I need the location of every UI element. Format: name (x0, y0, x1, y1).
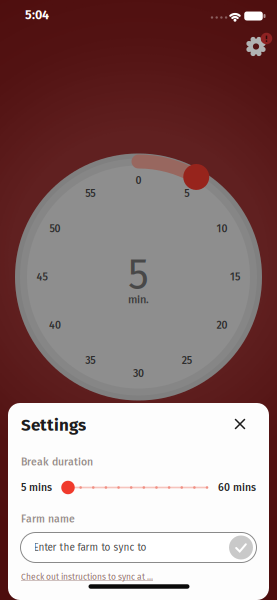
staticText: 5 (128, 250, 149, 299)
staticText: 50 (49, 222, 60, 235)
staticText: 5 (184, 187, 189, 200)
staticText: 35 (85, 354, 95, 367)
staticText: 10 (217, 222, 228, 235)
staticText: Break duration (21, 456, 93, 468)
staticText: 0 (135, 174, 141, 187)
staticText: Farm name (21, 513, 75, 525)
button[interactable]: Break duration slider (62, 478, 213, 496)
staticText: 5 mins (21, 481, 52, 494)
staticText: 45 (36, 271, 47, 283)
staticText: Settings (21, 415, 86, 435)
staticText: 20 (217, 319, 228, 332)
staticText: min. (128, 293, 149, 306)
button[interactable]: Enter the farm to sync to (20, 532, 257, 563)
button[interactable]: Check out instructions to sync at ... (21, 572, 153, 582)
staticText: 60 mins (218, 481, 256, 494)
staticText: 55 (85, 187, 95, 200)
staticText: Check out instructions to sync at ... (21, 572, 153, 582)
button[interactable]: Close (230, 414, 250, 434)
button[interactable]: Timer knob (183, 164, 209, 190)
staticText: 15 (230, 271, 240, 283)
button[interactable]: Confirm farm name (229, 535, 253, 559)
staticText: 5:04 (25, 7, 49, 22)
button[interactable]: Settings (239, 28, 273, 60)
staticText: 25 (182, 354, 192, 367)
staticText: 30 (133, 367, 144, 380)
staticText: 40 (49, 319, 61, 332)
staticText: Enter the farm to sync to (33, 541, 146, 553)
